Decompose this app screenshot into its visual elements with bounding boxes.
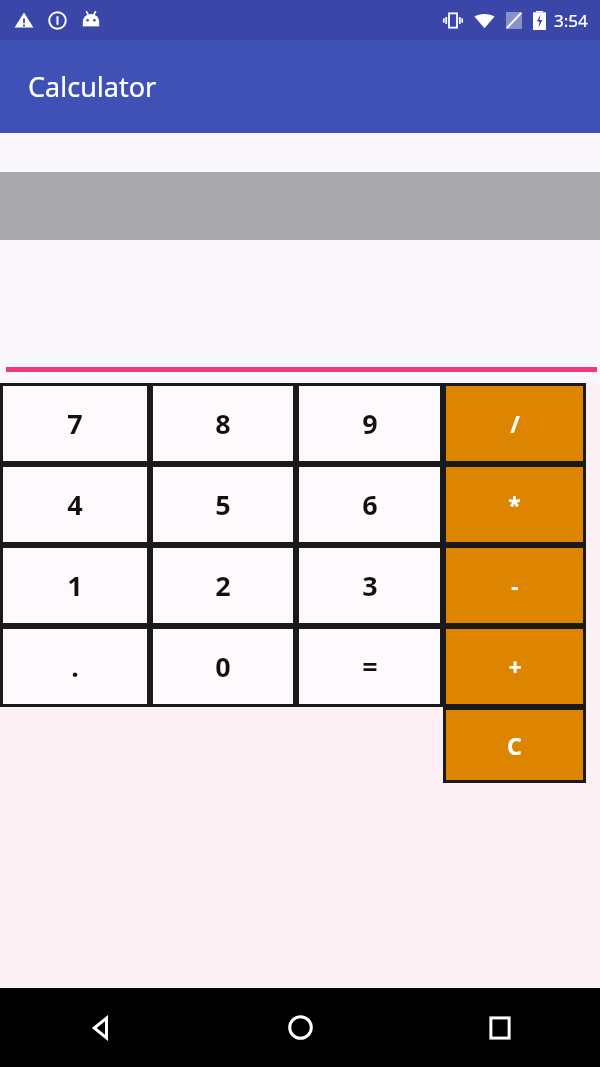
staticText: 3 bbox=[362, 567, 378, 604]
staticText: / bbox=[510, 408, 520, 439]
staticText: 1 bbox=[67, 567, 83, 604]
staticText: 0 bbox=[215, 648, 231, 685]
staticText: 7 bbox=[67, 405, 83, 442]
staticText: + bbox=[508, 651, 522, 682]
button[interactable]: = bbox=[299, 629, 440, 704]
button[interactable]: Home bbox=[200, 988, 400, 1067]
staticText: 2 bbox=[215, 567, 231, 604]
button[interactable]: 8 bbox=[153, 386, 293, 461]
button[interactable]: . bbox=[3, 629, 147, 704]
staticText: * bbox=[508, 489, 521, 520]
button[interactable]: / bbox=[446, 386, 583, 461]
button[interactable]: * bbox=[446, 467, 583, 542]
button[interactable]: - bbox=[446, 548, 583, 623]
button[interactable]: 2 bbox=[153, 548, 293, 623]
staticText: 8 bbox=[215, 405, 231, 442]
button[interactable]: 3 bbox=[299, 548, 440, 623]
staticText: C bbox=[507, 730, 522, 761]
staticText: . bbox=[71, 648, 79, 685]
button[interactable]: Back bbox=[0, 988, 200, 1067]
staticText: 6 bbox=[362, 486, 378, 523]
staticText: 9 bbox=[362, 405, 378, 442]
button[interactable]: 6 bbox=[299, 467, 440, 542]
staticText: Calculator bbox=[28, 68, 157, 105]
button[interactable]: + bbox=[446, 629, 583, 704]
button[interactable]: C bbox=[446, 710, 583, 780]
button[interactable]: 4 bbox=[3, 467, 147, 542]
button[interactable]: 0 bbox=[153, 629, 293, 704]
button[interactable]: Recent apps bbox=[400, 988, 600, 1067]
staticText: 3:54 bbox=[554, 9, 588, 32]
staticText: 5 bbox=[215, 486, 231, 523]
button[interactable]: 7 bbox=[3, 386, 147, 461]
button[interactable]: 5 bbox=[153, 467, 293, 542]
staticText: 4 bbox=[67, 486, 83, 523]
staticText: = bbox=[362, 648, 378, 685]
staticText: - bbox=[511, 570, 519, 601]
button[interactable]: 1 bbox=[3, 548, 147, 623]
button[interactable]: 9 bbox=[299, 386, 440, 461]
